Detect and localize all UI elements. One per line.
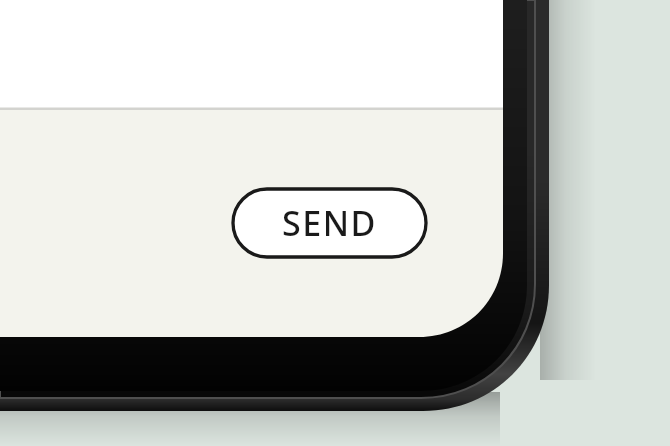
button[interactable]: Send: [233, 189, 426, 257]
